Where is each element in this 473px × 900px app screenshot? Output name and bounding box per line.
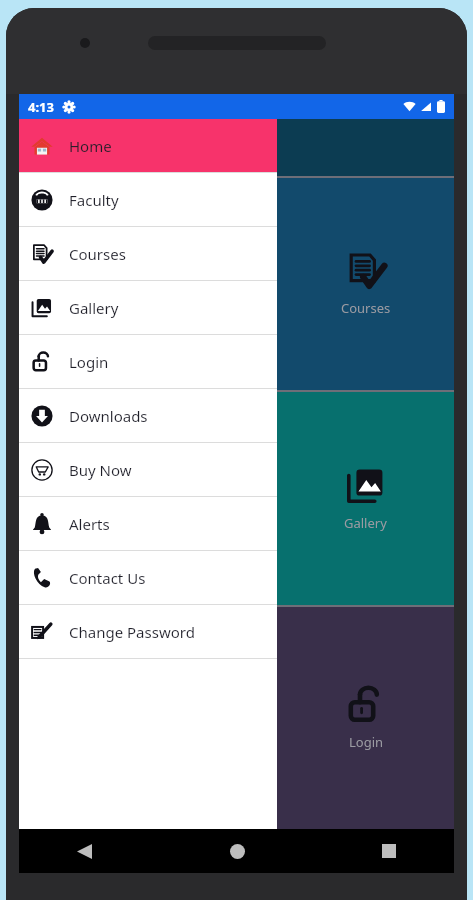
button[interactable]: Back — [67, 834, 101, 868]
button[interactable]: Login — [19, 607, 454, 829]
button[interactable]: Alerts — [19, 497, 277, 550]
button[interactable]: Gallery — [19, 281, 277, 334]
button[interactable]: Faculty — [19, 173, 277, 226]
button[interactable]: Login — [19, 335, 277, 388]
button[interactable]: Contact Us — [19, 551, 277, 604]
staticText: Courses — [69, 244, 126, 264]
staticText: Gallery — [344, 514, 387, 532]
button[interactable]: Downloads — [19, 389, 277, 442]
button[interactable]: Courses — [19, 227, 277, 280]
staticText: Home — [69, 136, 112, 156]
button[interactable]: Gallery — [19, 392, 454, 605]
staticText: Contact Us — [69, 568, 146, 588]
staticText: Gallery — [69, 298, 119, 318]
staticText: Downloads — [69, 406, 148, 426]
button[interactable]: Recents — [372, 834, 406, 868]
staticText: Login — [349, 733, 384, 751]
button[interactable]: Change Password — [19, 605, 277, 658]
staticText: Login — [69, 352, 109, 372]
staticText: Alerts — [69, 514, 110, 534]
button[interactable]: Buy Now — [19, 443, 277, 496]
staticText: Faculty — [69, 190, 119, 210]
button[interactable]: Home — [19, 119, 277, 172]
button[interactable]: Home — [220, 834, 254, 868]
button[interactable]: Courses — [19, 178, 454, 390]
staticText: Courses — [341, 299, 391, 317]
staticText: Buy Now — [69, 460, 132, 480]
staticText: 4:13 — [28, 98, 54, 116]
staticText: Change Password — [69, 622, 195, 642]
